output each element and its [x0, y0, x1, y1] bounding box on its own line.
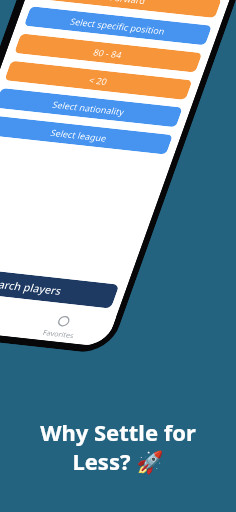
button[interactable]: Favorites — [7, 306, 116, 347]
staticText: Favorites — [42, 327, 76, 340]
staticText: 80 - 84 — [92, 46, 124, 61]
button[interactable]: Select league — [0, 115, 173, 155]
button[interactable]: Players — [0, 295, 17, 336]
staticText: Search players — [0, 276, 64, 297]
staticText: Forward — [108, 0, 147, 7]
staticText: Select league — [49, 126, 109, 144]
button[interactable]: Forward — [34, 0, 222, 18]
button[interactable]: Select specific position — [24, 6, 212, 45]
button[interactable]: < 20 — [4, 61, 192, 100]
staticText: Select nationality — [51, 98, 127, 118]
button[interactable]: Search players — [0, 265, 119, 308]
other: Favorites — [55, 314, 72, 328]
button[interactable]: Select nationality — [0, 88, 183, 127]
staticText: Select specific position — [69, 15, 167, 37]
staticText: Why Settle for Less? 🚀 — [40, 417, 196, 476]
staticText: < 20 — [87, 74, 109, 88]
button[interactable]: 80 - 84 — [14, 33, 202, 73]
